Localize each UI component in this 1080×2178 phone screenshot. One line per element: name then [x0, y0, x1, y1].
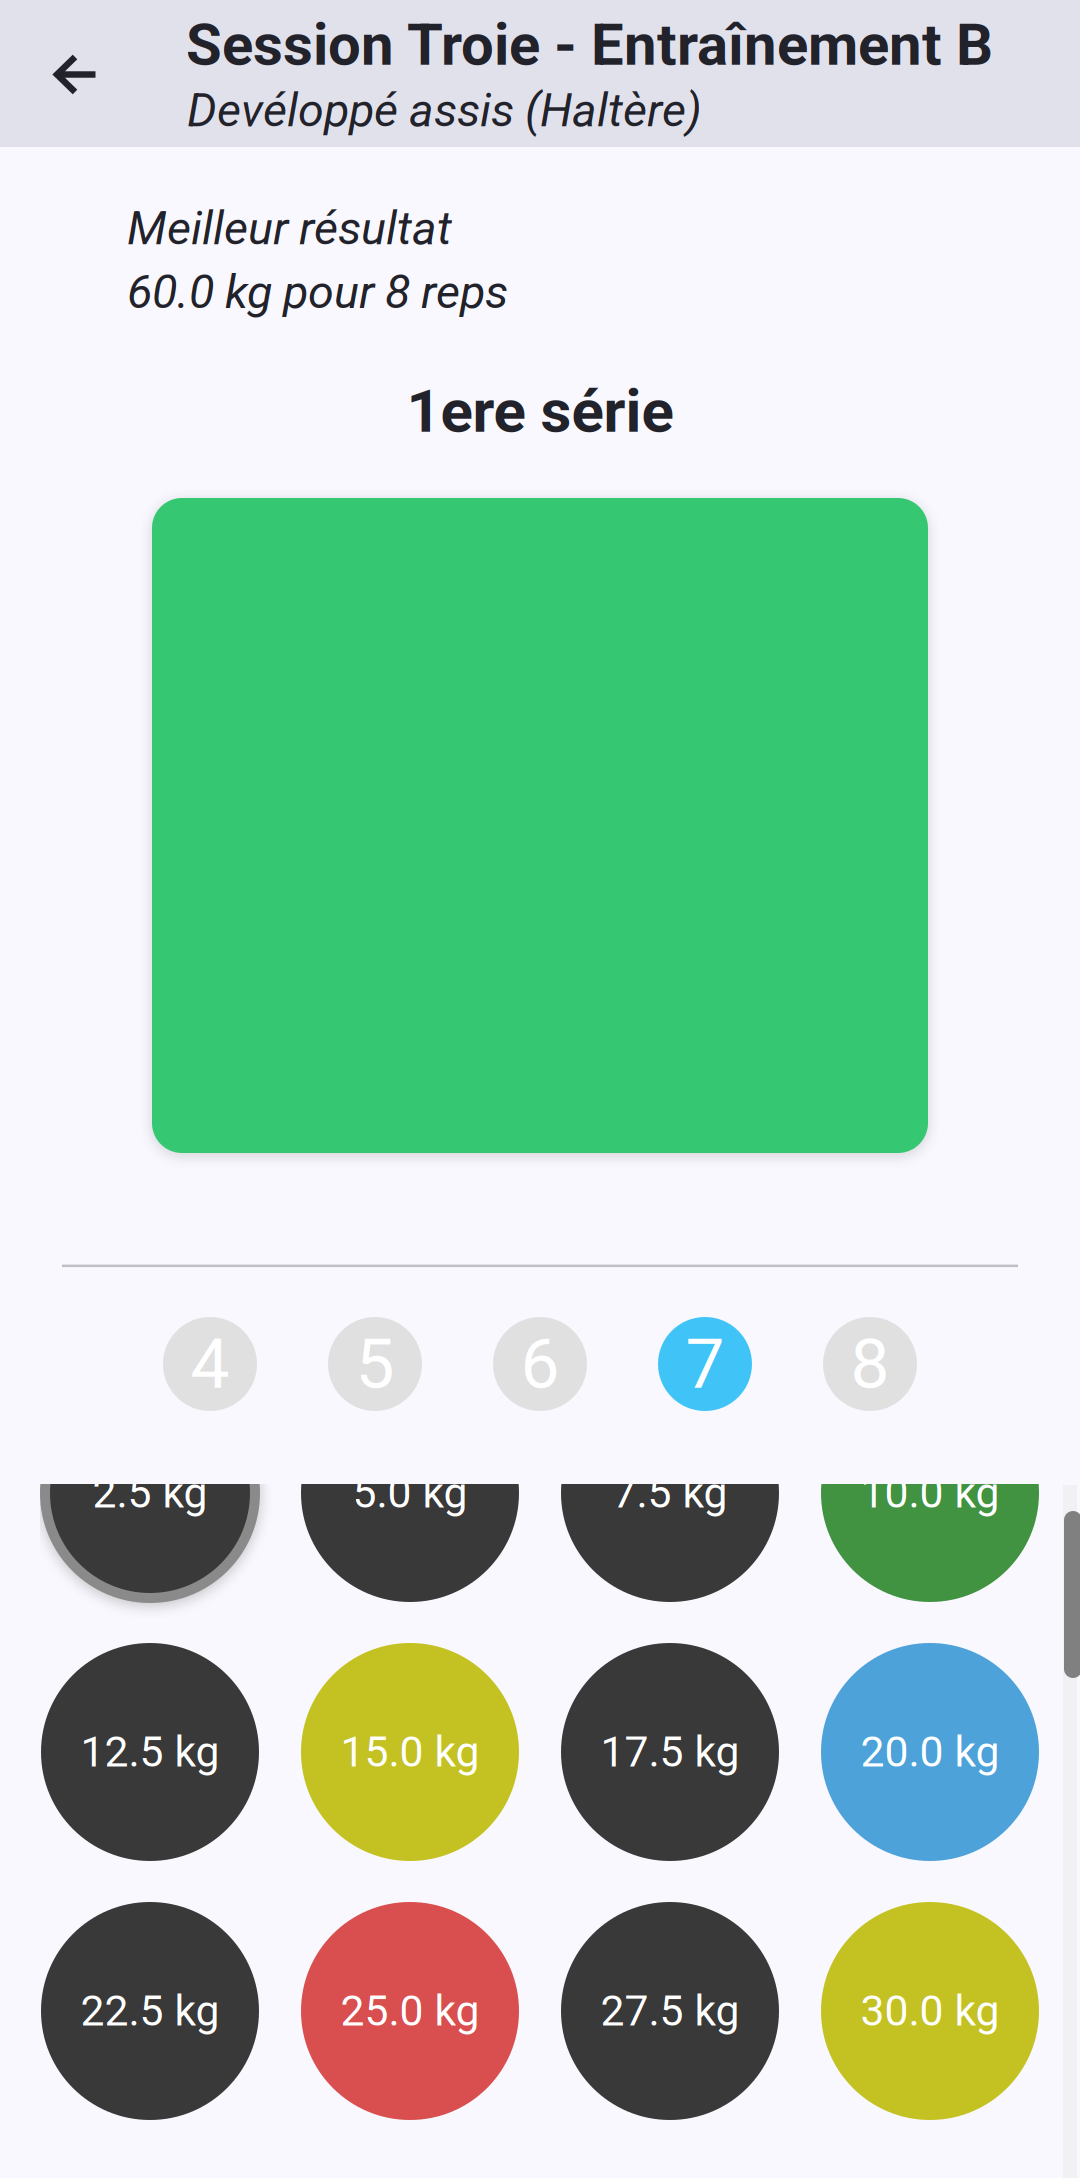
button[interactable]: 30.0 kg — [820, 1901, 1040, 2121]
button[interactable]: 4 — [163, 1317, 257, 1411]
button[interactable]: 6 — [493, 1317, 587, 1411]
staticText: 6 — [520, 1323, 559, 1405]
button[interactable]: 25.0 kg — [300, 1901, 520, 2121]
button[interactable]: 17.5 kg — [560, 1642, 780, 1862]
staticText: 7 — [685, 1323, 724, 1405]
button[interactable]: 20.0 kg — [820, 1642, 1040, 1862]
button[interactable]: 7.5 kg — [560, 1383, 780, 1603]
staticText: 5 — [355, 1323, 394, 1405]
button[interactable]: 2.5 kg — [40, 1383, 260, 1603]
button[interactable]: 7 — [658, 1317, 752, 1411]
staticText: 60.0 kg pour 8 reps — [127, 265, 508, 319]
button[interactable]: 5.0 kg — [300, 1383, 520, 1603]
staticText: 15.0 kg — [340, 1727, 479, 1777]
staticText: 2.5 kg — [92, 1468, 207, 1518]
button[interactable]: 27.5 kg — [560, 1901, 780, 2121]
staticText: 5.0 kg — [352, 1468, 467, 1518]
staticText: 27.5 kg — [600, 1986, 739, 2036]
staticText: 17.5 kg — [600, 1727, 739, 1777]
staticText: 10.0 kg — [860, 1468, 999, 1518]
button[interactable]: 5 — [328, 1317, 422, 1411]
staticText: 8 — [850, 1323, 889, 1405]
staticText: Devéloppé assis (Haltère) — [187, 83, 702, 138]
button[interactable]: 8 — [823, 1317, 917, 1411]
button[interactable]: 22.5 kg — [40, 1901, 260, 2121]
staticText: 12.5 kg — [80, 1727, 219, 1777]
staticText: 30.0 kg — [860, 1986, 999, 2036]
staticText: 25.0 kg — [340, 1986, 479, 2036]
staticText: 1ere série — [406, 376, 673, 446]
staticText: Session Troie - Entraînement B — [186, 11, 993, 79]
button[interactable]: 10.0 kg — [820, 1383, 1040, 1603]
button[interactable]: 12.5 kg — [40, 1642, 260, 1862]
button[interactable]: Back — [11, 1, 141, 148]
staticText: 7.5 kg — [612, 1468, 727, 1518]
staticText: Meilleur résultat — [127, 201, 452, 256]
button[interactable]: 15.0 kg — [300, 1642, 520, 1862]
staticText: 20.0 kg — [860, 1727, 999, 1777]
staticText: 22.5 kg — [80, 1986, 219, 2036]
staticText: 4 — [190, 1323, 229, 1405]
button[interactable]: Valider la série — [152, 498, 928, 1153]
